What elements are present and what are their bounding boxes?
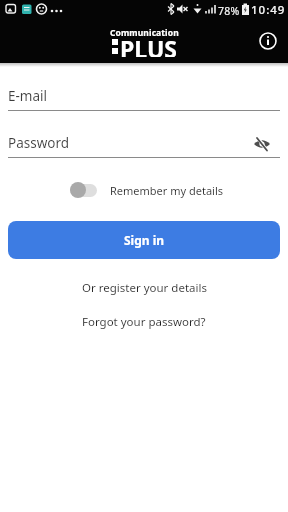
staticText: Communication (110, 27, 179, 39)
button[interactable]: Forgot your password? (0, 312, 288, 332)
staticText: Or register your details (82, 280, 207, 296)
staticText: PLUS (120, 33, 177, 57)
staticText: Password (8, 134, 70, 152)
button[interactable]: E-mail (0, 84, 288, 114)
button[interactable]: Password (0, 131, 288, 161)
button[interactable] (257, 30, 279, 52)
staticText: 78% (218, 4, 240, 18)
staticText: 10:49 (251, 2, 286, 18)
button[interactable]: Or register your details (0, 278, 288, 298)
staticText: Sign in (124, 232, 165, 248)
button[interactable]: Sign in (8, 221, 280, 259)
staticText: E-mail (8, 87, 48, 105)
staticText: Remember my details (110, 183, 224, 198)
staticText: Forgot your password? (82, 314, 206, 330)
button[interactable]: Remember my details (70, 178, 224, 202)
button[interactable] (250, 132, 274, 156)
